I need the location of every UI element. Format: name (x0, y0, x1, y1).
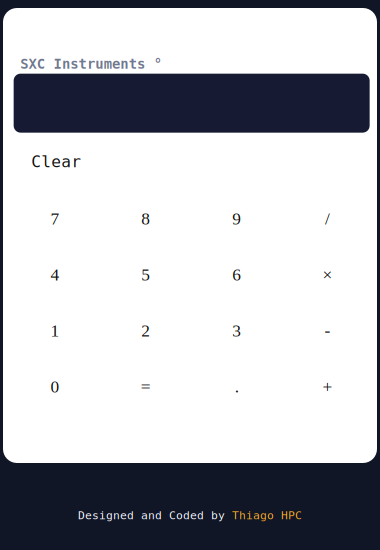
button[interactable]: 8 (100, 191, 191, 247)
staticText: Designed and Coded by (78, 509, 232, 522)
button[interactable]: 3 (191, 303, 282, 359)
staticText: 8 (141, 209, 150, 228)
button[interactable]: 0 (10, 359, 100, 415)
button[interactable]: 1 (10, 303, 100, 359)
button[interactable]: Thiago HPC (232, 509, 302, 522)
staticText: + (322, 377, 332, 396)
button[interactable]: 6 (191, 247, 282, 303)
button[interactable]: - (282, 303, 373, 359)
staticText: 7 (51, 209, 60, 228)
button[interactable]: 2 (100, 303, 191, 359)
staticText: 3 (232, 321, 241, 340)
staticText: 4 (51, 265, 60, 284)
staticText: 2 (141, 321, 150, 340)
button[interactable]: 4 (10, 247, 100, 303)
staticText: / (325, 209, 330, 228)
button[interactable]: 5 (100, 247, 191, 303)
staticText: Clear (31, 152, 81, 171)
button[interactable]: Clear (7, 142, 151, 182)
button[interactable]: + (282, 359, 373, 415)
button[interactable]: / (282, 191, 373, 247)
staticText: × (322, 265, 332, 284)
button[interactable]: 7 (10, 191, 100, 247)
staticText: . (235, 377, 239, 396)
staticText: Thiago HPC (232, 509, 302, 522)
staticText: 1 (51, 321, 60, 340)
staticText: SXC Instruments ° (20, 56, 162, 72)
staticText: 0 (51, 377, 60, 396)
staticText: = (141, 377, 151, 396)
button[interactable]: = (100, 359, 191, 415)
staticText: 5 (141, 265, 150, 284)
button[interactable]: × (282, 247, 373, 303)
staticText: - (324, 321, 330, 340)
button[interactable]: . (191, 359, 282, 415)
button[interactable]: 9 (191, 191, 282, 247)
staticText: 9 (232, 209, 241, 228)
staticText: 6 (232, 265, 241, 284)
